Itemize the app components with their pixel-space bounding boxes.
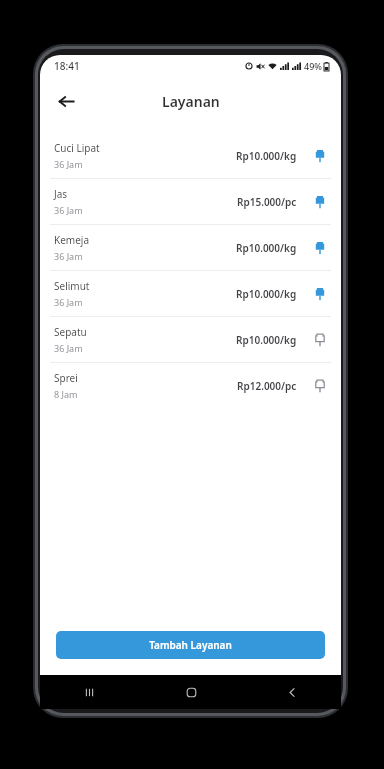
staticText: Rp15.000/pc [237,195,297,209]
staticText: 49% [304,60,322,72]
staticText: 36 Jam [54,204,83,216]
button[interactable]: Back [46,81,86,121]
button[interactable]: Pin [309,329,331,351]
staticText: Rp10.000/kg [236,287,297,301]
button[interactable]: Jas [40,179,341,224]
staticText: 36 Jam [54,342,83,354]
staticText: Rp10.000/kg [236,241,297,255]
staticText: Rp12.000/pc [237,379,297,393]
staticText: Selimut [54,279,90,293]
button[interactable]: Unpin [309,283,331,305]
button[interactable]: Unpin [309,237,331,259]
button[interactable]: Recents [74,677,104,707]
button[interactable]: Unpin [309,191,331,213]
staticText: 18:41 [54,59,80,73]
staticText: Sprei [54,371,78,385]
button[interactable]: Home [176,677,206,707]
staticText: Jas [54,187,68,201]
staticText: 36 Jam [54,158,83,170]
button[interactable]: Sprei [40,363,341,408]
button[interactable]: Cuci Lipat [40,133,341,178]
button[interactable]: Kemeja [40,225,341,270]
button[interactable]: Pin [309,375,331,397]
button[interactable]: Tambah Layanan [56,631,325,659]
staticText: Rp10.000/kg [236,149,297,163]
staticText: Sepatu [54,325,87,339]
button[interactable]: Back [277,677,307,707]
staticText: 36 Jam [54,296,83,308]
staticText: Layanan [162,92,220,111]
button[interactable]: Unpin [309,145,331,167]
staticText: Rp10.000/kg [236,333,297,347]
staticText: Tambah Layanan [149,638,232,652]
staticText: Cuci Lipat [54,141,100,155]
staticText: 8 Jam [54,388,78,400]
staticText: 36 Jam [54,250,83,262]
staticText: Kemeja [54,233,90,247]
button[interactable]: Sepatu [40,317,341,362]
button[interactable]: Selimut [40,271,341,316]
